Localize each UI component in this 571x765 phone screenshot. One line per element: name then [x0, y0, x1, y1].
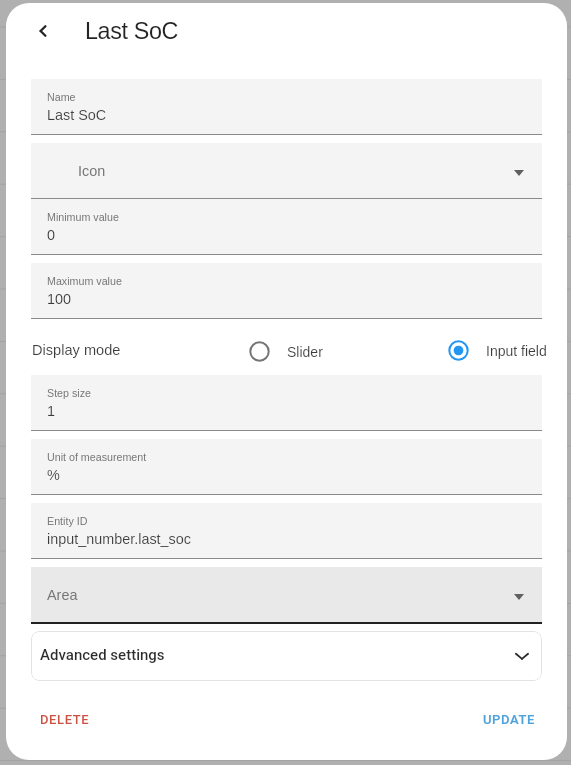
- button[interactable]: UPDATE: [475, 705, 543, 734]
- button[interactable]: Entity ID: [31, 503, 542, 559]
- staticText: Slider: [287, 344, 323, 360]
- staticText: DELETE: [40, 712, 90, 727]
- staticText: Name: [47, 91, 76, 103]
- staticText: 0: [47, 227, 56, 243]
- button[interactable]: Minimum value: [31, 199, 542, 255]
- button[interactable]: Step size: [31, 375, 542, 431]
- button[interactable]: Back: [21, 9, 65, 53]
- button[interactable]: Slider: [249, 341, 323, 362]
- button[interactable]: DELETE: [31, 705, 99, 734]
- staticText: input_number.last_soc: [47, 531, 191, 547]
- staticText: Area: [47, 587, 78, 603]
- staticText: Entity ID: [47, 515, 88, 527]
- staticText: Input field: [486, 343, 547, 359]
- staticText: Display mode: [32, 342, 121, 358]
- staticText: Unit of measurement: [47, 451, 147, 463]
- staticText: Maximum value: [47, 275, 122, 287]
- button[interactable]: Unit of measurement: [31, 439, 542, 495]
- staticText: 1: [47, 403, 56, 419]
- staticText: Icon: [78, 163, 106, 179]
- staticText: Last SoC: [47, 107, 107, 123]
- staticText: 100: [47, 291, 72, 307]
- staticText: Minimum value: [47, 211, 119, 223]
- staticText: UPDATE: [483, 712, 535, 727]
- staticText: %: [47, 467, 60, 483]
- staticText: Advanced settings: [40, 646, 165, 664]
- staticText: Step size: [47, 387, 91, 399]
- button[interactable]: Area: [31, 567, 542, 624]
- staticText: Last SoC: [85, 18, 179, 44]
- button[interactable]: Input field: [448, 340, 547, 361]
- button[interactable]: Name: [31, 79, 542, 135]
- button[interactable]: Maximum value: [31, 263, 542, 319]
- button[interactable]: Icon: [31, 143, 542, 199]
- button[interactable]: Advanced settings: [31, 631, 542, 681]
